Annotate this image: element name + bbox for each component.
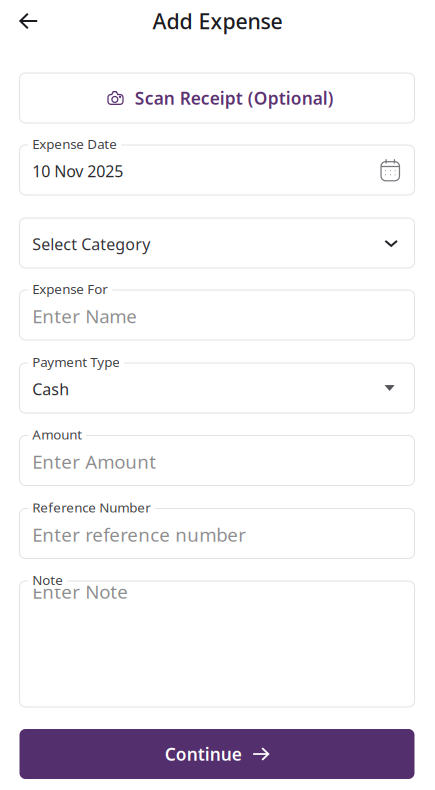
staticText: Add Expense [152, 7, 282, 35]
staticText: Enter reference number [32, 522, 246, 547]
staticText: Scan Receipt (Optional) [135, 86, 334, 109]
button[interactable]: Cash [19, 363, 414, 413]
staticText: Enter Amount [32, 449, 156, 474]
staticText: 10 Nov 2025 [32, 160, 123, 182]
staticText: Amount [32, 425, 82, 443]
staticText: Reference Number [32, 498, 151, 516]
staticText: Enter Name [32, 304, 137, 328]
staticText: Expense For [32, 280, 108, 298]
staticText: Continue [165, 742, 242, 765]
staticText: Note [32, 571, 63, 589]
staticText: Expense Date [32, 135, 117, 153]
staticText: Enter Note [32, 579, 128, 604]
staticText: Select Category [32, 233, 150, 255]
button[interactable]: Select Category [19, 218, 414, 268]
button[interactable]: 10 Nov 2025 [19, 145, 414, 195]
button[interactable]: Scan Receipt (Optional) [19, 73, 414, 123]
button[interactable]: Continue [19, 729, 414, 779]
staticText: Payment Type [32, 353, 120, 371]
button[interactable]: Back [0, 0, 75, 42]
staticText: Cash [32, 378, 69, 400]
